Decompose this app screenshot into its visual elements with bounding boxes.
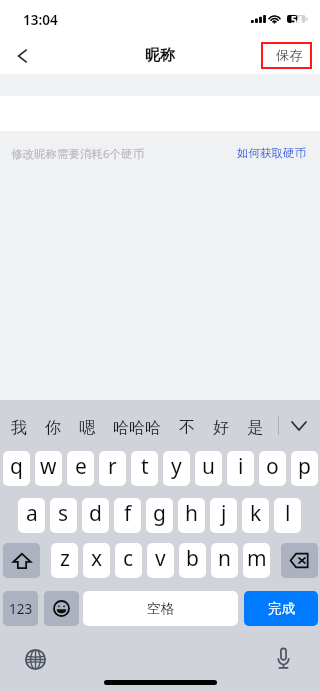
button[interactable]: Voice input — [267, 642, 300, 675]
staticText: 修改昵称需要消耗6个硬币 — [11, 146, 145, 162]
staticText: t — [141, 452, 149, 481]
button[interactable]: 不 — [170, 412, 204, 444]
staticText: 完成 — [268, 600, 295, 617]
staticText: g — [153, 499, 166, 528]
staticText: 哈哈哈 — [113, 418, 161, 438]
staticText: 123 — [9, 600, 33, 618]
staticText: 54 — [291, 13, 303, 27]
button[interactable]: s — [50, 498, 77, 533]
button[interactable]: 好 — [204, 412, 238, 444]
staticText: 昵称 — [145, 46, 175, 65]
staticText: k — [250, 499, 262, 528]
staticText: 不 — [179, 418, 195, 438]
button[interactable]: w — [35, 451, 62, 486]
button[interactable]: j — [210, 498, 237, 533]
button[interactable]: t — [131, 451, 158, 486]
staticText: 空格 — [147, 600, 174, 617]
button[interactable]: 你 — [36, 412, 70, 444]
button[interactable]: 我 — [2, 412, 36, 444]
staticText: z — [60, 544, 70, 573]
button[interactable]: i — [227, 451, 254, 486]
staticText: p — [298, 452, 311, 481]
staticText: a — [26, 499, 38, 528]
staticText: 嗯 — [79, 418, 95, 438]
button[interactable]: d — [82, 498, 109, 533]
staticText: r — [108, 452, 117, 481]
staticText: h — [185, 499, 198, 528]
button[interactable]: l — [274, 498, 301, 533]
button[interactable]: e — [67, 451, 94, 486]
button[interactable]: 嗯 — [70, 412, 104, 444]
button[interactable]: k — [242, 498, 269, 533]
button[interactable]: 是 — [238, 412, 272, 444]
button[interactable]: 空格 — [83, 591, 238, 626]
staticText: m — [247, 544, 267, 573]
button[interactable]: c — [115, 543, 142, 578]
staticText: i — [238, 452, 244, 481]
button[interactable]: 保存 — [261, 42, 312, 69]
staticText: q — [10, 452, 23, 481]
button[interactable]: f — [114, 498, 141, 533]
button[interactable]: 123 — [3, 591, 38, 626]
staticText: n — [218, 544, 231, 573]
staticText: s — [58, 499, 69, 528]
button[interactable]: o — [259, 451, 286, 486]
button[interactable]: m — [243, 543, 270, 578]
staticText: l — [285, 499, 291, 528]
button[interactable]: z — [51, 543, 78, 578]
button[interactable]: x — [83, 543, 110, 578]
staticText: 保存 — [276, 47, 303, 64]
staticText: f — [124, 499, 132, 528]
button[interactable]: q — [3, 451, 30, 486]
staticText: y — [171, 452, 182, 481]
staticText: 你 — [45, 418, 61, 438]
staticText: v — [155, 544, 166, 573]
button[interactable]: y — [163, 451, 190, 486]
staticText: w — [40, 452, 57, 481]
staticText: 如何获取硬币 — [237, 146, 306, 160]
button[interactable]: Shift — [3, 543, 40, 578]
button[interactable]: Emoji — [44, 591, 79, 626]
staticText: x — [91, 544, 103, 573]
button[interactable]: u — [195, 451, 222, 486]
staticText: u — [202, 452, 215, 481]
staticText: 我 — [11, 418, 27, 438]
staticText: 13:04 — [23, 11, 58, 29]
button[interactable]: r — [99, 451, 126, 486]
button[interactable]: p — [291, 451, 318, 486]
staticText: j — [221, 499, 227, 528]
button[interactable]: n — [211, 543, 238, 578]
button[interactable]: v — [147, 543, 174, 578]
button[interactable]: a — [18, 498, 45, 533]
staticText: c — [123, 544, 134, 573]
button[interactable]: g — [146, 498, 173, 533]
button[interactable]: b — [179, 543, 206, 578]
staticText: e — [75, 452, 87, 481]
staticText: 好 — [213, 418, 229, 438]
button[interactable]: 如何获取硬币 — [234, 143, 309, 163]
staticText: 是 — [247, 418, 263, 438]
button[interactable]: 哈哈哈 — [104, 412, 170, 444]
staticText: b — [186, 544, 199, 573]
button[interactable]: Hide keyboard — [278, 400, 320, 451]
button[interactable]: h — [178, 498, 205, 533]
button[interactable]: Switch keyboard — [19, 643, 52, 676]
button[interactable]: Backspace — [281, 543, 318, 578]
staticText: o — [266, 452, 279, 481]
staticText: d — [89, 499, 102, 528]
button[interactable]: 完成 — [244, 591, 318, 626]
button[interactable]: Back — [0, 38, 44, 74]
